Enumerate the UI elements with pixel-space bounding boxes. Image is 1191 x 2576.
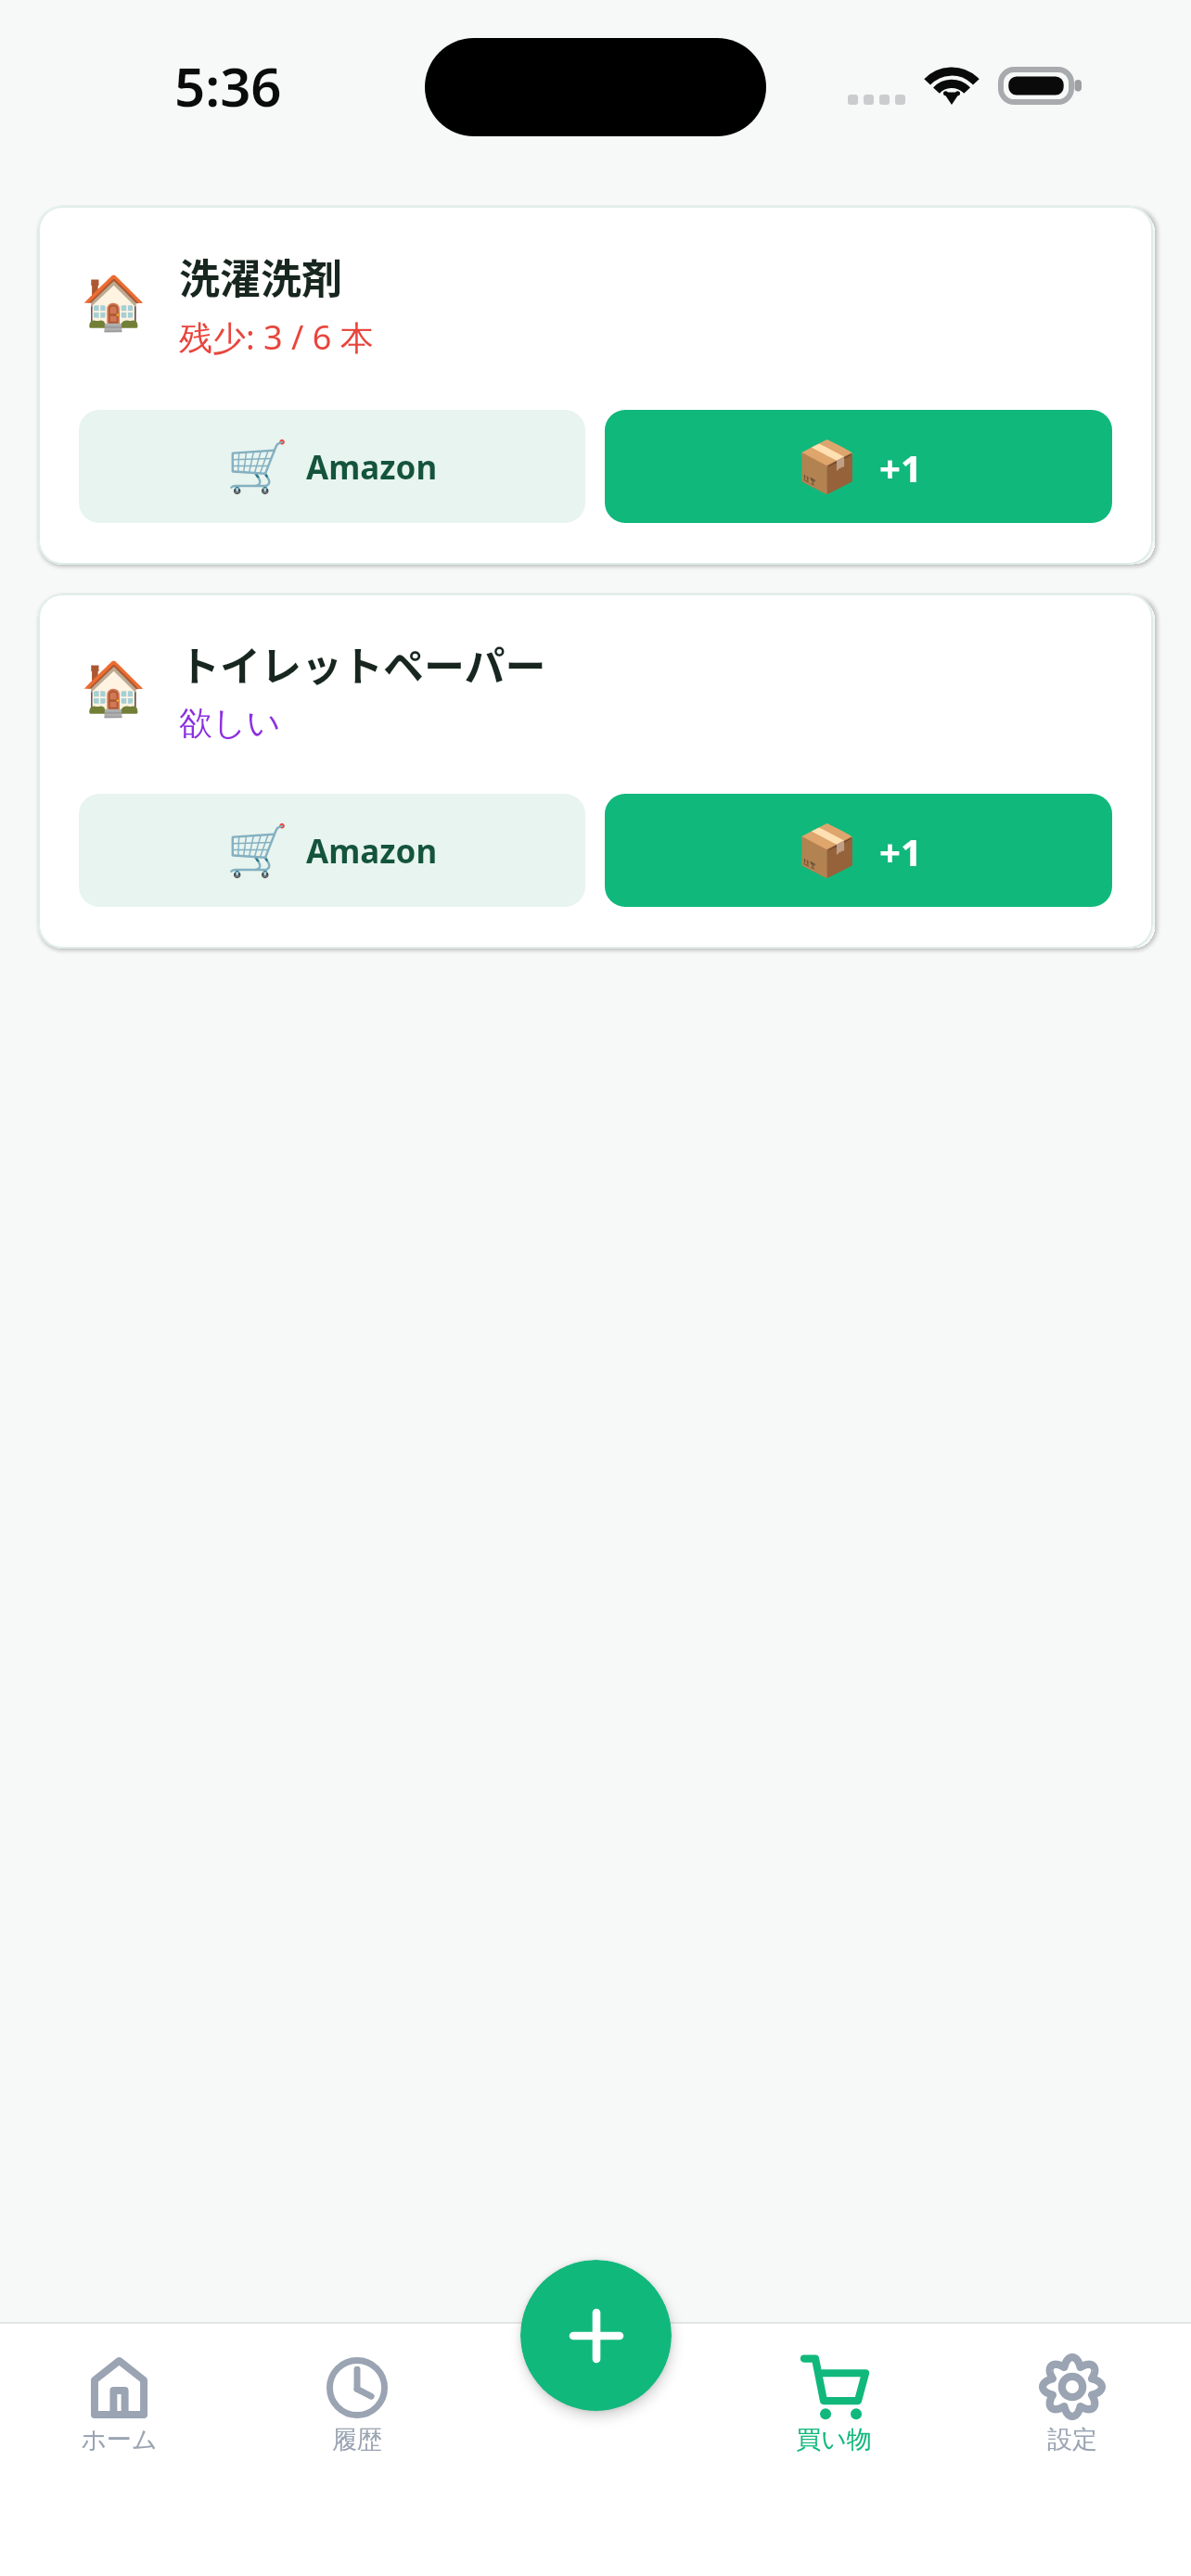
button[interactable]: 🏠 <box>38 593 1153 949</box>
staticText: トイレットペーパー <box>179 634 546 694</box>
staticText: 履歴 <box>332 2424 382 2455</box>
button[interactable]: 📦 <box>605 794 1112 907</box>
button[interactable]: 設定 <box>953 2351 1191 2576</box>
staticText: 📦 <box>796 438 859 496</box>
staticText: Amazon <box>306 829 438 874</box>
staticText: 📦 <box>796 822 859 880</box>
button[interactable]: Add item <box>520 2260 672 2411</box>
staticText: 洗濯洗剤 <box>179 247 342 306</box>
staticText: 残少: 3 / 6 本 <box>179 314 374 360</box>
staticText: 🛒 <box>226 438 289 496</box>
staticText: +1 <box>879 442 922 492</box>
button[interactable]: ホーム <box>0 2351 237 2576</box>
staticText: 🛒 <box>226 822 289 880</box>
staticText: 5:36 <box>174 49 282 122</box>
button[interactable]: 🛒 <box>79 410 585 523</box>
staticText: +1 <box>879 826 922 876</box>
staticText: 買い物 <box>796 2424 872 2455</box>
staticText: 🏠 <box>81 657 147 720</box>
button[interactable]: 🛒 <box>79 794 585 907</box>
button[interactable]: 履歴 <box>237 2351 476 2576</box>
staticText: 欲しい <box>179 702 281 744</box>
staticText: 設定 <box>1047 2424 1097 2455</box>
button[interactable]: 📦 <box>605 410 1112 523</box>
staticText: Amazon <box>306 445 438 490</box>
staticText: ホーム <box>81 2424 158 2455</box>
button[interactable]: 🏠 <box>38 206 1153 565</box>
button[interactable]: 買い物 <box>714 2351 953 2576</box>
staticText: 🏠 <box>81 272 147 334</box>
